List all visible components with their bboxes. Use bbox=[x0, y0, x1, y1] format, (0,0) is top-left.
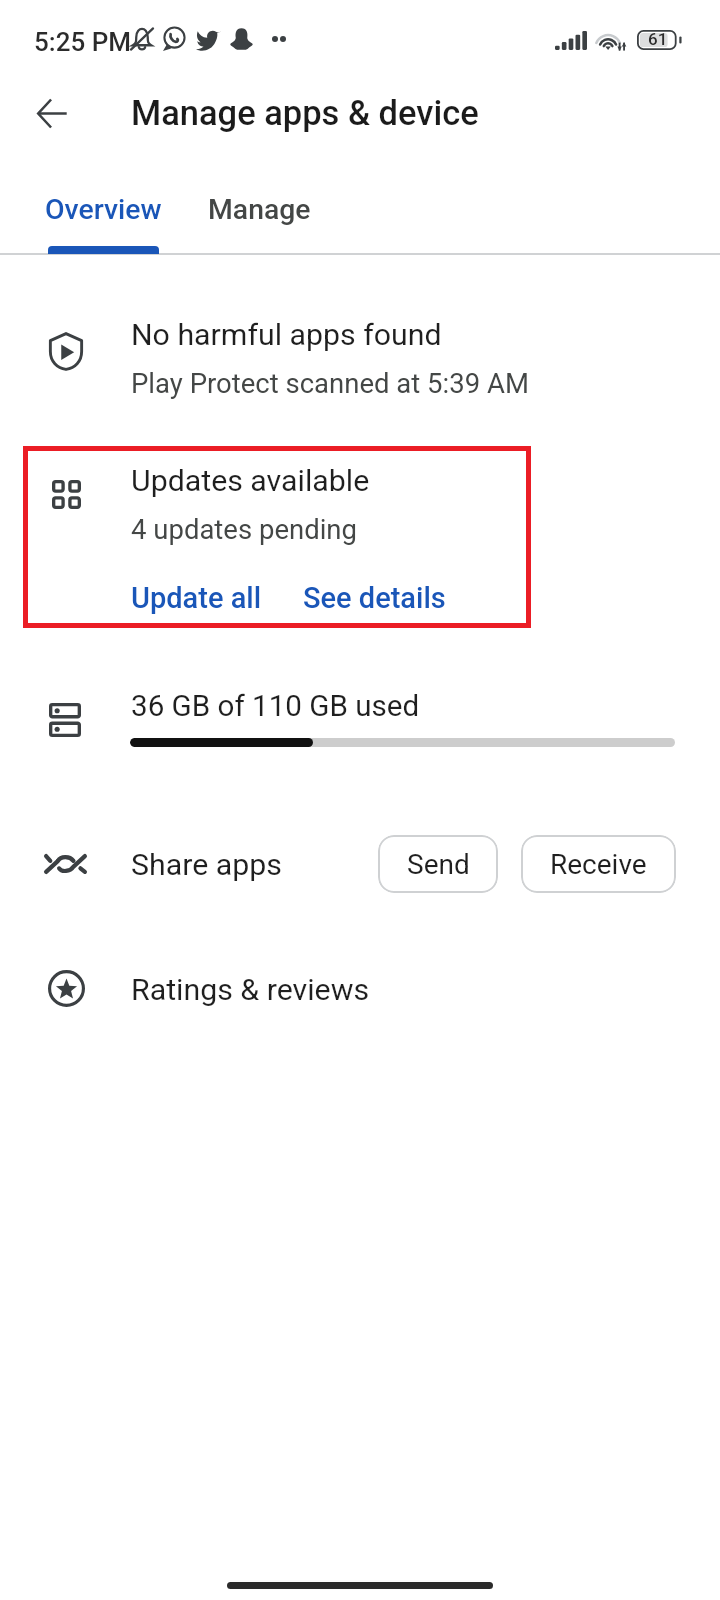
button[interactable]: Back bbox=[23, 84, 81, 142]
button[interactable]: 36 GB of 110 GB used bbox=[0, 662, 720, 778]
staticText: See details bbox=[303, 581, 446, 615]
button[interactable]: Ratings & reviews bbox=[0, 928, 720, 1048]
staticText: Receive bbox=[550, 848, 647, 881]
button[interactable]: Updates available bbox=[23, 446, 531, 628]
staticText: 36 GB of 110 GB used bbox=[131, 689, 420, 724]
staticText: Update all bbox=[131, 581, 262, 615]
staticText: Updates available bbox=[131, 463, 370, 499]
staticText: 4 updates pending bbox=[131, 513, 357, 545]
staticText: 5:25 PM bbox=[34, 27, 131, 57]
staticText: Send bbox=[407, 848, 470, 881]
button[interactable]: See details bbox=[303, 581, 446, 615]
staticText: Share apps bbox=[131, 847, 282, 883]
staticText: 61 bbox=[648, 29, 668, 49]
button[interactable]: No harmful apps found bbox=[0, 292, 720, 414]
button[interactable]: Send bbox=[378, 835, 498, 893]
button[interactable]: Overview bbox=[0, 178, 208, 254]
staticText: Play Protect scanned at 5:39 AM bbox=[131, 367, 529, 399]
button[interactable]: Share apps bbox=[0, 804, 360, 924]
staticText: No harmful apps found bbox=[131, 317, 442, 353]
button[interactable]: Receive bbox=[521, 835, 676, 893]
staticText: Manage apps & device bbox=[131, 93, 479, 133]
button[interactable]: Update all bbox=[131, 581, 262, 615]
staticText: Ratings & reviews bbox=[131, 972, 370, 1008]
staticText: Manage bbox=[208, 193, 311, 226]
button[interactable]: Manage bbox=[208, 178, 398, 254]
staticText: Overview bbox=[45, 193, 162, 226]
